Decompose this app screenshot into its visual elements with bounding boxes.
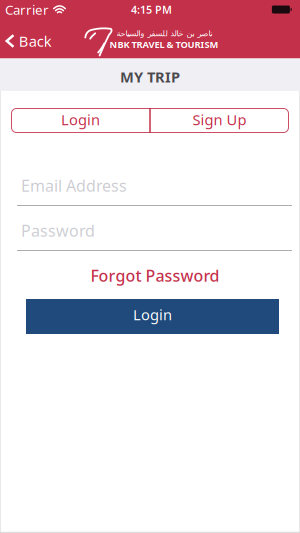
button[interactable]: Password	[21, 218, 300, 242]
staticText: Sign Up	[192, 110, 246, 129]
staticText: MY TRIP	[120, 67, 180, 86]
staticText: ناصر بن خالد للسفر والسياحة	[116, 29, 212, 38]
staticText: Password	[21, 220, 95, 241]
button[interactable]: Email Address	[21, 173, 300, 197]
staticText: Forgot Password	[90, 265, 219, 286]
staticText: 4:15 PM	[131, 2, 172, 17]
button[interactable]: Login	[26, 299, 279, 334]
button[interactable]: Sign Up	[150, 108, 289, 133]
button[interactable]: Back	[5, 31, 52, 51]
button[interactable]: Forgot Password	[90, 265, 219, 286]
staticText: Login	[61, 110, 100, 129]
button[interactable]: Login	[11, 108, 150, 133]
staticText: Carrier	[5, 1, 49, 18]
staticText: Login	[133, 305, 172, 324]
staticText: Back	[19, 31, 52, 51]
staticText: Email Address	[21, 175, 127, 196]
staticText: NBK TRAVEL & TOURISM	[109, 38, 218, 51]
